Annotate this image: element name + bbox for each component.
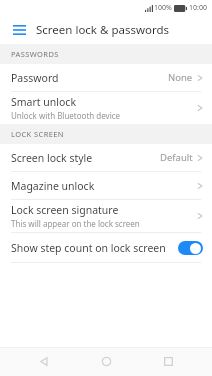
button[interactable]: Lock screen signature <box>0 200 212 232</box>
staticText: This will appear on the lock screen <box>11 218 140 229</box>
staticText: Magazine unlock <box>11 179 95 193</box>
button[interactable]: Menu <box>8 19 30 41</box>
button[interactable]: Recents <box>137 347 199 376</box>
staticText: Default <box>160 151 193 164</box>
button[interactable]: Screen lock style <box>0 144 212 171</box>
staticText: 100% <box>154 3 172 13</box>
staticText: Screen lock style <box>11 151 93 165</box>
button[interactable]: Back <box>13 347 75 376</box>
button[interactable]: Password <box>0 64 212 91</box>
staticText: Lock screen signature <box>11 203 119 217</box>
button[interactable]: Smart unlock <box>0 92 212 124</box>
button[interactable]: Home <box>75 347 137 376</box>
staticText: PASSWORDS <box>11 49 59 59</box>
staticText: Smart unlock <box>11 95 77 109</box>
staticText: 10:00 <box>189 3 207 13</box>
button[interactable]: Magazine unlock <box>0 172 212 199</box>
staticText: None <box>168 71 193 84</box>
staticText: Unlock with Bluetooth device <box>11 110 121 121</box>
staticText: Screen lock & passwords <box>36 22 170 38</box>
button[interactable]: Show step count on lock screen <box>0 233 212 262</box>
staticText: LOCK SCREEN <box>11 129 64 139</box>
staticText: Show step count on lock screen <box>11 241 166 255</box>
staticText: Password <box>11 71 59 85</box>
